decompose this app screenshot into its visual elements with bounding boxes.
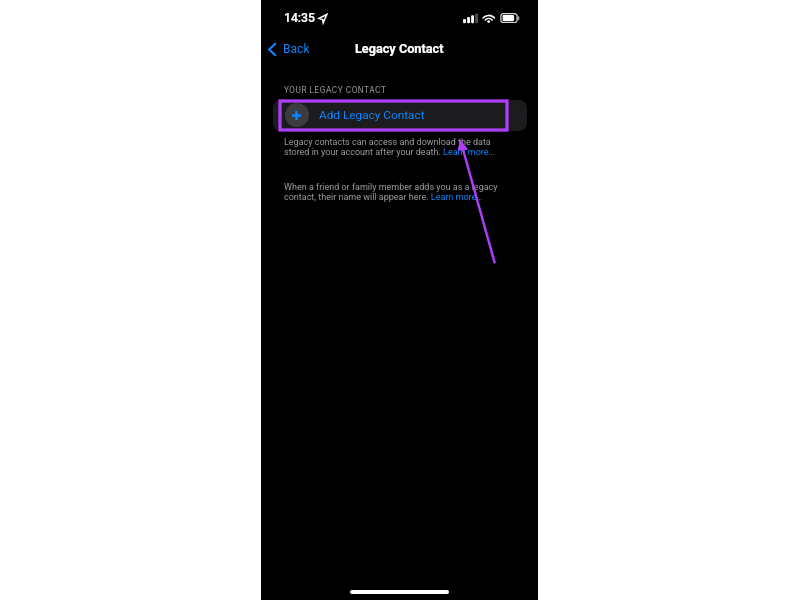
staticText: YOUR LEGACY CONTACT <box>284 85 387 95</box>
button[interactable]: Add Legacy Contact <box>273 100 527 131</box>
staticText: Legacy Contact <box>355 41 444 56</box>
button[interactable]: Learn more about legacy contacts <box>444 147 497 156</box>
staticText: Add Legacy Contact <box>319 108 425 122</box>
button[interactable]: Back <box>261 38 318 60</box>
staticText: Back <box>283 42 310 56</box>
button[interactable]: Learn more about being a legacy contact <box>431 192 484 201</box>
staticText: Legacy contacts can access and download … <box>284 137 499 157</box>
staticText: When a friend or family member adds you … <box>284 182 499 202</box>
other: Back <box>268 43 276 56</box>
staticText: 14:35 <box>284 11 315 25</box>
